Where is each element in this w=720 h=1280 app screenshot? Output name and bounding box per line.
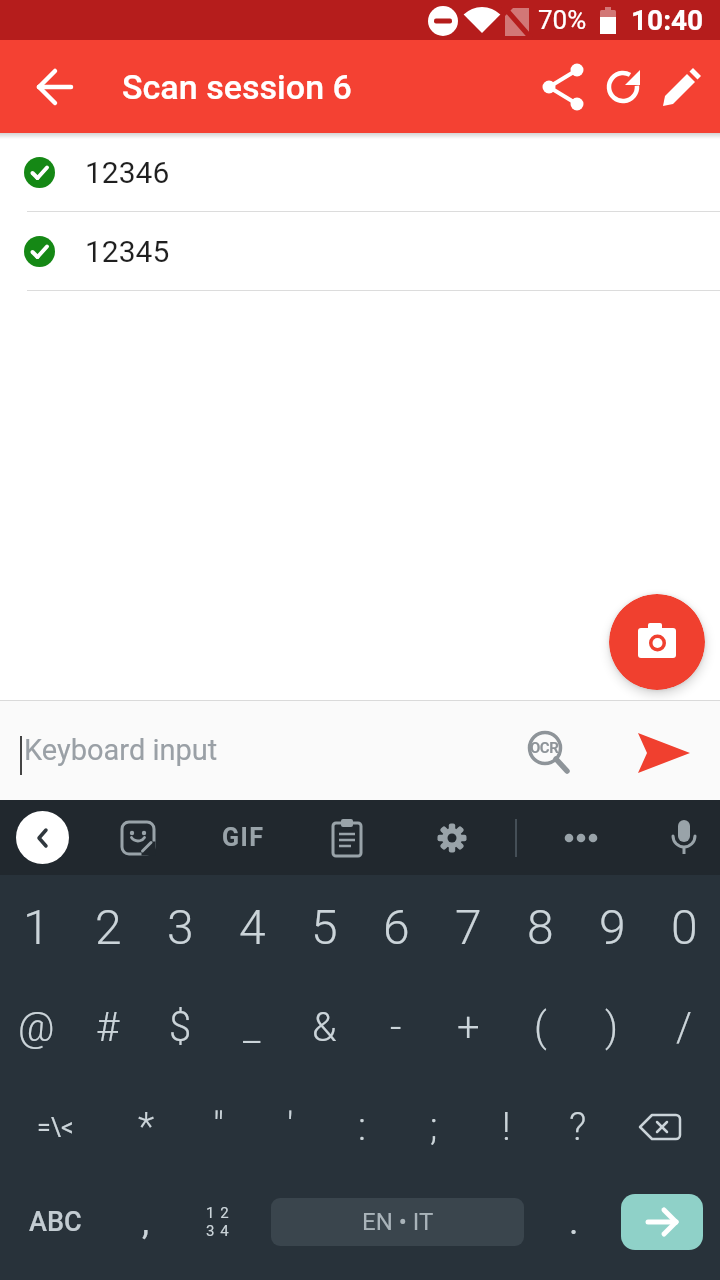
staticText: * bbox=[138, 1105, 155, 1150]
button[interactable]: 2 bbox=[72, 877, 144, 977]
button[interactable]: 1 2 bbox=[182, 1172, 254, 1272]
button[interactable] bbox=[609, 594, 705, 690]
button[interactable] bbox=[323, 814, 371, 862]
button[interactable]: & bbox=[288, 977, 360, 1077]
staticText: 10:40 bbox=[631, 4, 704, 37]
staticText: ( bbox=[534, 1004, 547, 1051]
staticText: EN • IT bbox=[362, 1208, 434, 1236]
button[interactable]: ) bbox=[576, 977, 648, 1077]
button[interactable]: ' bbox=[254, 1077, 326, 1177]
button[interactable] bbox=[660, 814, 708, 862]
button[interactable] bbox=[30, 63, 78, 111]
staticText: Scan session 6 bbox=[122, 67, 352, 107]
staticText: . bbox=[569, 1201, 579, 1243]
button[interactable]: ! bbox=[470, 1077, 542, 1177]
staticText: ? bbox=[569, 1105, 587, 1150]
button[interactable]: 0 bbox=[648, 877, 720, 977]
button[interactable]: Keyboard input bbox=[24, 700, 218, 800]
button[interactable]: # bbox=[72, 977, 144, 1077]
button[interactable]: . bbox=[538, 1172, 610, 1272]
button[interactable] bbox=[630, 727, 686, 783]
staticText: 2 bbox=[95, 899, 122, 955]
staticText: 4 bbox=[239, 899, 266, 955]
button[interactable]: / bbox=[648, 977, 720, 1077]
staticText: 1 bbox=[23, 899, 50, 955]
staticText: 7 bbox=[455, 899, 482, 955]
button[interactable] bbox=[16, 811, 69, 864]
staticText: + bbox=[457, 1004, 480, 1051]
button[interactable]: ; bbox=[398, 1077, 470, 1177]
button[interactable]: ABC bbox=[0, 1172, 110, 1272]
button[interactable]: * bbox=[110, 1077, 182, 1177]
staticText: 5 bbox=[311, 899, 338, 955]
button[interactable]: + bbox=[432, 977, 504, 1077]
staticText: Keyboard input bbox=[24, 733, 218, 767]
staticText: 3 bbox=[167, 899, 194, 955]
button[interactable]: 9 bbox=[576, 877, 648, 977]
staticText: " bbox=[213, 1105, 224, 1150]
staticText: 12345 bbox=[85, 234, 170, 269]
button[interactable]: " bbox=[182, 1077, 254, 1177]
staticText: ' bbox=[287, 1105, 294, 1150]
staticText: 70% bbox=[538, 5, 587, 35]
button[interactable]: GIF bbox=[213, 800, 273, 875]
staticText: 0 bbox=[671, 899, 698, 955]
button[interactable]: - bbox=[360, 977, 432, 1077]
staticText: / bbox=[676, 1004, 692, 1051]
staticText: 6 bbox=[383, 899, 410, 955]
staticText: 9 bbox=[599, 899, 626, 955]
staticText: - bbox=[390, 1004, 402, 1051]
button[interactable]: ( bbox=[504, 977, 576, 1077]
staticText: _ bbox=[243, 1004, 261, 1051]
staticText: @ bbox=[18, 1004, 55, 1051]
staticText: # bbox=[96, 1004, 120, 1051]
staticText: 3 4 bbox=[206, 1222, 230, 1240]
button[interactable]: 3 bbox=[144, 877, 216, 977]
staticText: , bbox=[142, 1201, 150, 1243]
staticText: 12346 bbox=[85, 155, 170, 190]
button[interactable] bbox=[428, 814, 476, 862]
staticText: ABC bbox=[29, 1206, 82, 1238]
button[interactable]: 7 bbox=[432, 877, 504, 977]
button[interactable]: _ bbox=[216, 977, 288, 1077]
button[interactable]: @ bbox=[0, 977, 72, 1077]
button[interactable]: $ bbox=[144, 977, 216, 1077]
button[interactable] bbox=[621, 1194, 703, 1250]
staticText: OCR bbox=[530, 739, 559, 757]
button[interactable] bbox=[557, 814, 605, 862]
staticText: 1 2 bbox=[206, 1204, 230, 1222]
button[interactable] bbox=[658, 63, 706, 111]
button[interactable] bbox=[614, 1103, 720, 1151]
button[interactable]: OCR bbox=[518, 722, 574, 778]
button[interactable] bbox=[539, 63, 587, 111]
button[interactable]: 8 bbox=[504, 877, 576, 977]
button[interactable]: 1 bbox=[0, 877, 72, 977]
button[interactable] bbox=[599, 63, 647, 111]
staticText: =\< bbox=[37, 1113, 74, 1142]
staticText: ; bbox=[430, 1105, 438, 1150]
staticText: & bbox=[312, 1004, 337, 1051]
button[interactable]: 5 bbox=[288, 877, 360, 977]
button[interactable] bbox=[114, 814, 162, 862]
button[interactable]: 12346 bbox=[0, 133, 720, 211]
button[interactable]: EN • IT bbox=[271, 1198, 524, 1246]
button[interactable]: 4 bbox=[216, 877, 288, 977]
button[interactable]: ? bbox=[542, 1077, 614, 1177]
button[interactable]: : bbox=[326, 1077, 398, 1177]
staticText: 8 bbox=[527, 899, 554, 955]
staticText: ! bbox=[502, 1105, 511, 1150]
button[interactable]: , bbox=[110, 1172, 182, 1272]
staticText: GIF bbox=[222, 823, 265, 852]
button[interactable]: =\< bbox=[0, 1077, 110, 1177]
button[interactable]: 6 bbox=[360, 877, 432, 977]
staticText: $ bbox=[169, 1004, 192, 1051]
staticText: : bbox=[358, 1105, 366, 1150]
button[interactable]: 12345 bbox=[0, 212, 720, 290]
staticText: ) bbox=[605, 1004, 619, 1051]
